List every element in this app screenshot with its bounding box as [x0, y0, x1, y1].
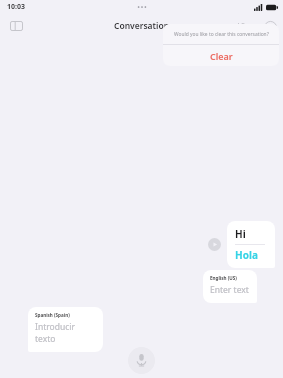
- button[interactable]: Hi: [227, 221, 275, 268]
- staticText: Spanish (Spain): [35, 312, 70, 318]
- staticText: Hi: [235, 227, 246, 241]
- staticText: Would you like to clear this conversatio…: [174, 31, 269, 38]
- staticText: Hola: [235, 248, 258, 262]
- button[interactable]: Clear: [163, 45, 279, 66]
- button[interactable]: View: [235, 18, 259, 35]
- staticText: Clear: [210, 50, 233, 62]
- staticText: English (US): [210, 275, 237, 281]
- staticText: Enter text: [210, 284, 249, 296]
- staticText: 10:03: [7, 2, 25, 12]
- staticText: View: [238, 21, 256, 32]
- button[interactable]: Play audio: [208, 238, 221, 251]
- button[interactable]: More options: [262, 19, 278, 35]
- button[interactable]: Spanish (Spain): [28, 307, 103, 352]
- staticText: Introducir texto: [35, 321, 97, 345]
- staticText: Conversation: [114, 20, 170, 32]
- button[interactable]: Toggle sidebar: [6, 16, 26, 36]
- button[interactable]: English (US): [203, 270, 257, 303]
- button[interactable]: Microphone: [128, 347, 155, 374]
